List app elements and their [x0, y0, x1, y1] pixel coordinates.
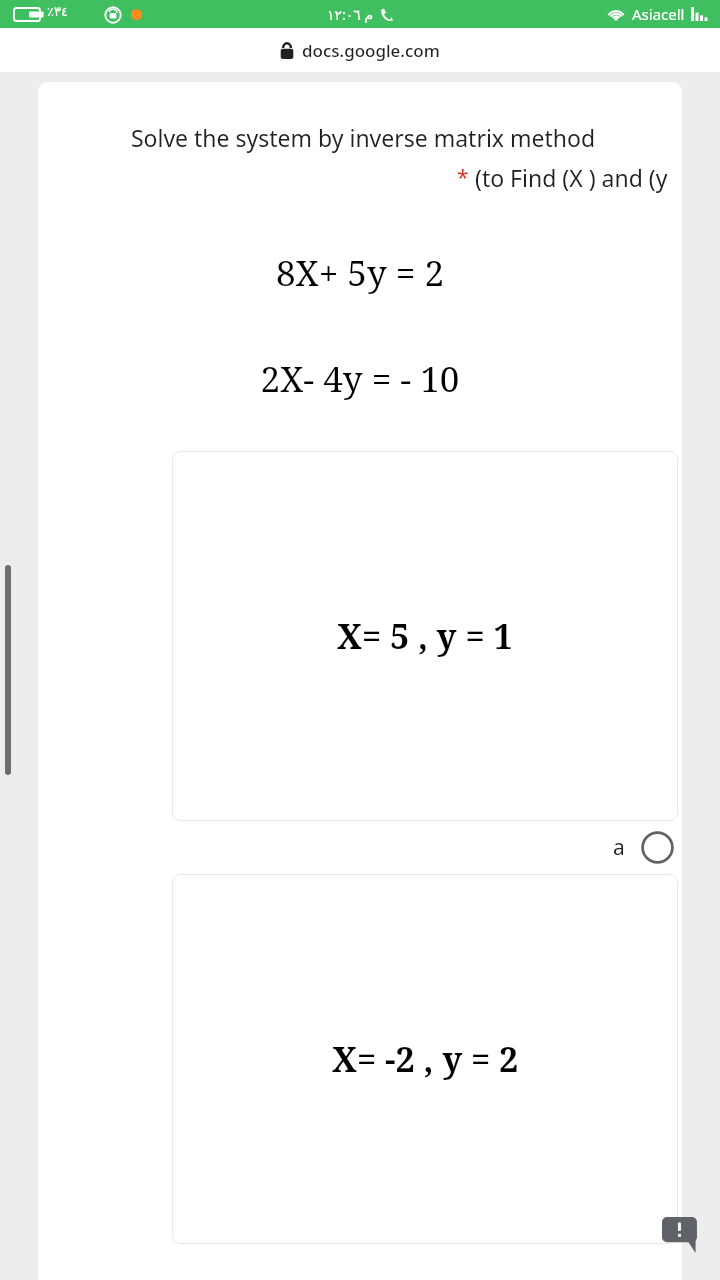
staticText: a: [613, 833, 625, 862]
staticText: *: [457, 163, 469, 192]
staticText: م ١٢:٠٦: [327, 5, 374, 24]
staticText: ٪٣٤: [47, 4, 68, 19]
staticText: X= -2 , y = 2: [332, 1036, 519, 1082]
staticText: (to Find (X ) and (y: [475, 162, 668, 193]
button[interactable]: X= 5 , y = 1: [172, 451, 678, 821]
button[interactable]: X= -2 , y = 2: [172, 874, 678, 1244]
staticText: 2X- 4y = - 10: [38, 355, 682, 403]
button[interactable]: a: [607, 823, 680, 872]
staticText: X= 5 , y = 1: [337, 613, 513, 659]
staticText: Asiacell: [632, 4, 685, 24]
staticText: Solve the system by inverse matrix metho…: [58, 122, 668, 153]
staticText: docs.google.com: [302, 39, 440, 62]
staticText: 8X+ 5y = 2: [38, 249, 682, 297]
button[interactable]: Send feedback: [660, 1214, 702, 1256]
